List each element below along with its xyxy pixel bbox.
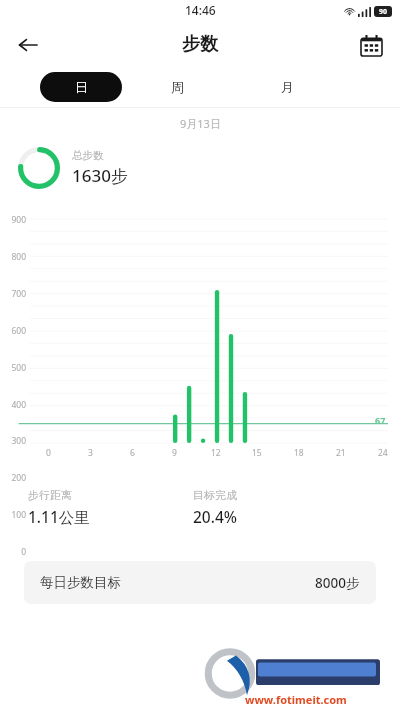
staticText: 步行距离 bbox=[28, 488, 72, 502]
staticText: 67 bbox=[375, 414, 386, 426]
staticText: 周 bbox=[171, 79, 184, 95]
staticText: 300 bbox=[11, 435, 26, 447]
staticText: 月 bbox=[281, 79, 294, 95]
staticText: www.fotimeit.com bbox=[245, 692, 347, 707]
button[interactable]: 每日步数目标 bbox=[24, 561, 376, 604]
staticText: 0 bbox=[46, 447, 51, 459]
staticText: 0 bbox=[21, 546, 26, 558]
staticText: 18 bbox=[294, 447, 304, 459]
staticText: 700 bbox=[11, 288, 26, 300]
staticText: 20.4% bbox=[193, 506, 238, 527]
button[interactable]: Back bbox=[8, 25, 48, 65]
staticText: 1.11公里 bbox=[28, 506, 90, 527]
staticText: 900 bbox=[11, 214, 26, 226]
staticText: 100 bbox=[11, 509, 26, 521]
button[interactable]: Calendar bbox=[352, 26, 390, 64]
staticText: 12 bbox=[211, 447, 221, 459]
staticText: 1630步 bbox=[72, 164, 128, 187]
staticText: 目标完成 bbox=[193, 488, 237, 502]
staticText: 总步数 bbox=[72, 149, 104, 162]
staticText: 14:46 bbox=[185, 2, 216, 18]
staticText: 日 bbox=[75, 79, 88, 95]
staticText: 9 bbox=[172, 447, 177, 459]
staticText: 800 bbox=[11, 251, 26, 263]
staticText: 21 bbox=[336, 447, 346, 459]
staticText: 3 bbox=[88, 447, 93, 459]
staticText: 15 bbox=[252, 447, 262, 459]
staticText: 600 bbox=[11, 325, 26, 337]
staticText: 200 bbox=[11, 472, 26, 484]
staticText: 90 bbox=[379, 7, 388, 17]
staticText: 9月13日 bbox=[180, 116, 221, 131]
staticText: 每日步数目标 bbox=[40, 574, 121, 591]
staticText: 8000步 bbox=[315, 574, 360, 592]
staticText: 500 bbox=[11, 362, 26, 374]
staticText: 24 bbox=[378, 447, 388, 459]
staticText: 6 bbox=[130, 447, 135, 459]
button[interactable]: 周 bbox=[122, 72, 232, 102]
staticText: 400 bbox=[11, 399, 26, 411]
button[interactable]: 日 bbox=[40, 72, 122, 102]
staticText: 步数 bbox=[182, 33, 218, 56]
button[interactable]: 月 bbox=[232, 72, 342, 102]
